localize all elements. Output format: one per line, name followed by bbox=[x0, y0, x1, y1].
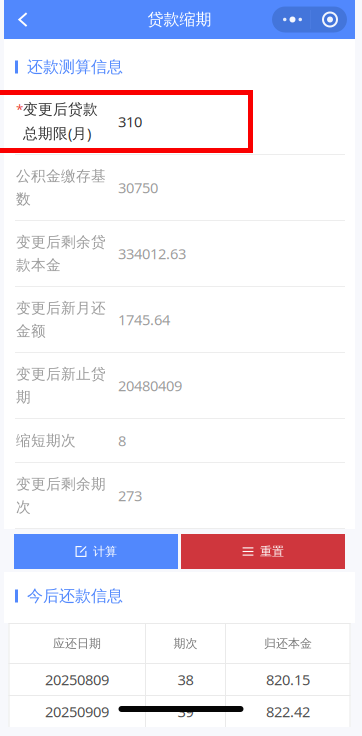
staticText: 变更后新月还金额 bbox=[16, 299, 106, 340]
staticText: 39 bbox=[177, 702, 193, 721]
button[interactable]: 更多 bbox=[272, 6, 347, 32]
button[interactable]: * bbox=[4, 89, 355, 155]
staticText: 重置 bbox=[260, 544, 284, 559]
button[interactable]: 变更后剩余期次 bbox=[4, 463, 355, 529]
staticText: 归还本金 bbox=[264, 636, 312, 651]
button[interactable]: 变更后新止贷期 bbox=[4, 353, 355, 419]
button[interactable]: 变更后剩余贷款本金 bbox=[4, 221, 355, 287]
staticText: 310 bbox=[118, 112, 142, 131]
staticText: 变更后贷款总期限(月) bbox=[23, 100, 98, 143]
staticText: 20480409 bbox=[118, 376, 182, 395]
staticText: 今后还款信息 bbox=[27, 586, 123, 606]
button[interactable]: 公积金缴存基数 bbox=[4, 155, 355, 221]
staticText: * bbox=[16, 100, 23, 118]
staticText: 20250909 bbox=[45, 702, 109, 721]
staticText: 期次 bbox=[173, 636, 197, 651]
staticText: 变更后新止贷期 bbox=[16, 365, 106, 406]
staticText: 822.42 bbox=[266, 702, 310, 721]
staticText: 贷款缩期 bbox=[147, 10, 211, 29]
staticText: 1745.64 bbox=[118, 310, 170, 329]
staticText: 变更后剩余贷款本金 bbox=[16, 233, 106, 274]
staticText: 变更后剩余期次 bbox=[16, 475, 106, 516]
staticText: 8 bbox=[118, 431, 126, 450]
staticText: 334012.63 bbox=[118, 244, 186, 263]
button[interactable]: 返回 bbox=[4, 0, 42, 39]
staticText: 20250809 bbox=[45, 670, 109, 689]
staticText: 公积金缴存基数 bbox=[16, 167, 106, 208]
staticText: 273 bbox=[118, 486, 142, 505]
staticText: 还款测算信息 bbox=[27, 57, 123, 77]
staticText: 820.15 bbox=[266, 670, 310, 689]
staticText: 38 bbox=[177, 670, 193, 689]
staticText: 缩短期次 bbox=[16, 431, 76, 449]
button[interactable]: 缩短期次 bbox=[4, 419, 355, 463]
button[interactable]: 变更后新月还金额 bbox=[4, 287, 355, 353]
button[interactable]: 重置 bbox=[181, 534, 345, 569]
staticText: 计算 bbox=[93, 544, 117, 559]
button[interactable]: 计算 bbox=[14, 534, 178, 569]
staticText: 30750 bbox=[118, 178, 158, 197]
staticText: 应还日期 bbox=[53, 636, 101, 651]
